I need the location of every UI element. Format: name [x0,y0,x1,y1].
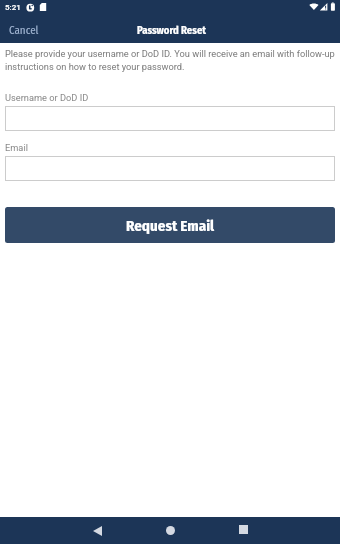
button[interactable]: Request Email [5,207,335,243]
staticText: 5:21 [5,3,21,12]
staticText: Request Email [126,217,215,235]
staticText: Username or DoD ID [5,92,89,103]
staticText: Please provide your username or DoD ID. … [5,48,335,72]
button[interactable] [5,156,335,181]
staticText: Email [5,142,28,153]
button[interactable]: Cancel [0,19,49,42]
button[interactable]: Home [156,517,184,544]
button[interactable]: Recent apps [229,516,257,543]
button[interactable] [5,106,335,131]
button[interactable]: Back [83,517,111,544]
staticText: Cancel [9,24,39,37]
staticText: Password Reset [137,24,206,37]
